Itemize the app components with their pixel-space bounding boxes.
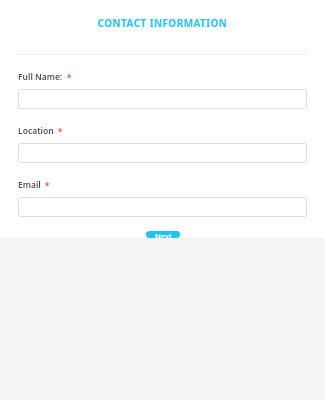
button[interactable] [18, 89, 307, 109]
staticText: Location [18, 125, 54, 137]
staticText: * [45, 180, 50, 191]
button[interactable] [18, 143, 307, 163]
staticText: * [67, 72, 72, 83]
staticText: CONTACT INFORMATION [0, 16, 325, 30]
staticText: * [58, 126, 63, 137]
button[interactable] [18, 197, 307, 217]
button[interactable]: Next [146, 231, 180, 238]
staticText: Next [155, 231, 172, 238]
staticText: Full Name: [18, 71, 63, 83]
staticText: Email [18, 179, 41, 191]
